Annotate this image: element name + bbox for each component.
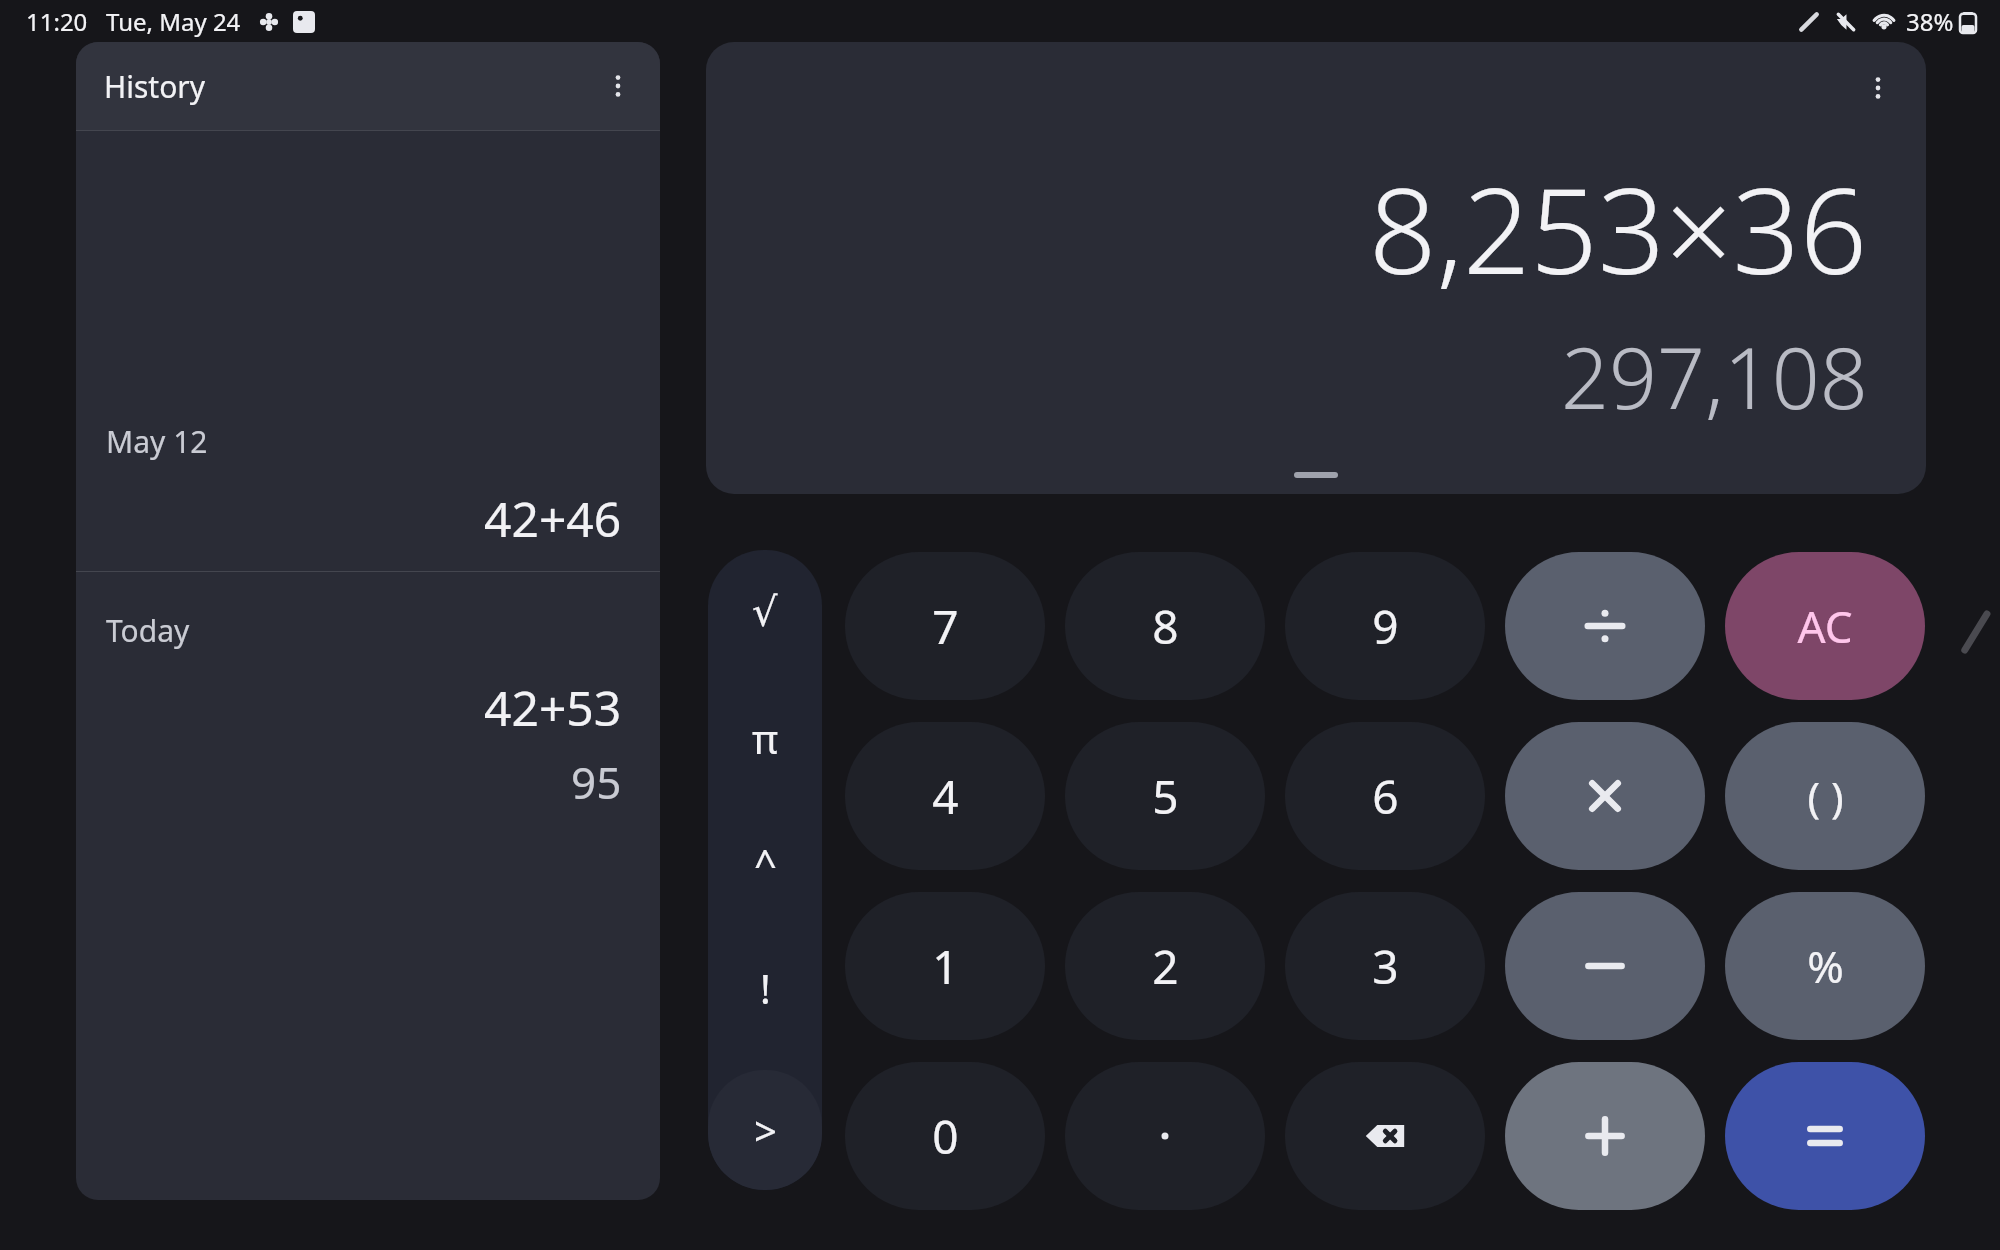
button[interactable]: 8	[1065, 552, 1265, 700]
staticText: 3	[1372, 935, 1399, 998]
staticText: >	[754, 1103, 777, 1157]
staticText: 6	[1372, 765, 1399, 828]
button[interactable]: π	[708, 675, 822, 800]
staticText: Today	[106, 610, 190, 651]
staticText: 4	[932, 765, 959, 828]
staticText: π	[752, 711, 779, 765]
staticText: ( )	[1807, 768, 1844, 825]
button[interactable]: 4	[845, 722, 1045, 870]
button[interactable]: Add	[1505, 1062, 1705, 1210]
staticText: 9	[1372, 595, 1399, 658]
button[interactable]: ( )	[1725, 722, 1925, 870]
button[interactable]: !	[708, 925, 822, 1050]
staticText: 0	[932, 1105, 959, 1168]
staticText: 95	[571, 752, 622, 812]
button[interactable]: √	[708, 550, 822, 675]
staticText: Tue, May 24	[106, 5, 241, 38]
button[interactable]: Today	[76, 572, 660, 1200]
staticText: 2	[1152, 935, 1179, 998]
staticText: 42+53	[484, 675, 622, 740]
button[interactable]: %	[1725, 892, 1925, 1040]
staticText: !	[760, 961, 771, 1015]
staticText: 7	[932, 595, 959, 658]
button[interactable]: History options	[590, 58, 646, 114]
staticText: AC	[1797, 596, 1853, 656]
button[interactable]: 7	[845, 552, 1045, 700]
button[interactable]: AC	[1725, 552, 1925, 700]
staticText: 38%	[1906, 5, 1954, 38]
button[interactable]: Divide	[1505, 552, 1705, 700]
staticText: History	[104, 66, 206, 107]
staticText: 11:20	[26, 5, 88, 38]
button[interactable]: 2	[1065, 892, 1265, 1040]
button[interactable]: 5	[1065, 722, 1265, 870]
button[interactable]: 9	[1285, 552, 1485, 700]
staticText: 8,253×36	[1369, 148, 1868, 309]
button[interactable]: 0	[845, 1062, 1045, 1210]
staticText: 8	[1152, 595, 1179, 658]
staticText: 5	[1152, 765, 1179, 828]
staticText: 42+46	[484, 486, 622, 551]
staticText: 1	[932, 935, 959, 998]
button[interactable]: Equals	[1725, 1062, 1925, 1210]
staticText: 297,108	[1561, 319, 1868, 433]
button[interactable]: More functions	[708, 1070, 822, 1190]
staticText: May 12	[106, 421, 208, 462]
staticText: ^	[754, 836, 777, 890]
button[interactable]: 6	[1285, 722, 1485, 870]
button[interactable]: Decimal point	[1065, 1062, 1265, 1210]
button[interactable]: Subtract	[1505, 892, 1705, 1040]
button[interactable]: Calculator options	[1848, 58, 1908, 118]
button[interactable]: Multiply	[1505, 722, 1705, 870]
staticText: √	[752, 589, 778, 636]
button[interactable]: 3	[1285, 892, 1485, 1040]
button[interactable]: Backspace	[1285, 1062, 1485, 1210]
button[interactable]: 1	[845, 892, 1045, 1040]
button[interactable]: May 12	[76, 131, 660, 571]
staticText: %	[1807, 936, 1844, 996]
button[interactable]: ^	[708, 800, 822, 925]
